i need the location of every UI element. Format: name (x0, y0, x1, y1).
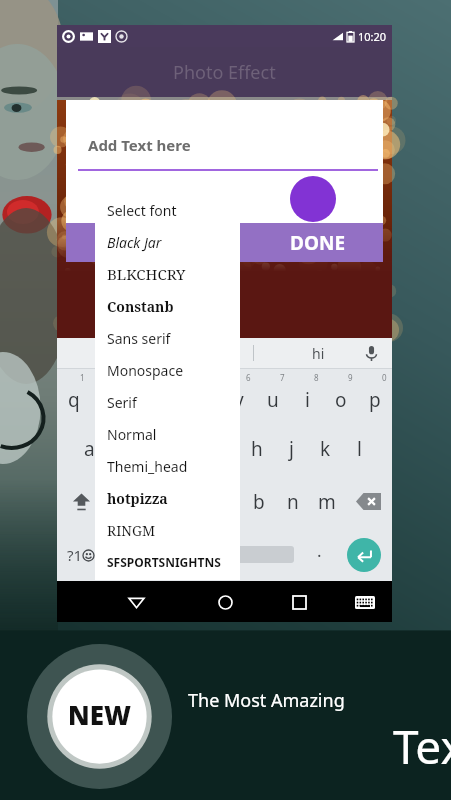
staticText: l (357, 436, 362, 462)
button[interactable]: b (242, 475, 276, 528)
button[interactable]: Home (208, 585, 242, 619)
button[interactable]: Black Jar (95, 226, 240, 258)
staticText: BLKCHCRY (107, 264, 186, 284)
staticText: The Most Amazing (188, 688, 345, 713)
button[interactable]: Select font (95, 194, 240, 226)
other: Voice input (364, 346, 379, 361)
staticText: NEW (68, 697, 131, 732)
staticText: i (305, 387, 310, 413)
staticText: Photo Effect (173, 60, 276, 85)
button[interactable]: Constanb (95, 290, 240, 322)
button[interactable]: DONE (66, 223, 383, 262)
staticText: 4 (179, 372, 184, 383)
staticText: SFSPORTSNIGHTNS (107, 554, 221, 570)
staticText: DONE (290, 230, 346, 256)
staticText: x (152, 489, 163, 515)
button[interactable]: v (208, 475, 242, 528)
staticText: . (317, 539, 322, 562)
button[interactable]: z (106, 475, 140, 528)
button[interactable]: Serif (95, 386, 240, 418)
button[interactable]: Backspace (344, 475, 392, 528)
staticText: Add Text here (88, 135, 191, 155)
staticText: d (150, 436, 162, 462)
button[interactable]: k (308, 422, 342, 475)
button[interactable]: Normal (95, 418, 240, 450)
staticText: j (289, 436, 294, 462)
staticText: 1 (80, 372, 85, 383)
button[interactable]: Keyboard (350, 587, 380, 617)
button[interactable]: Back (119, 585, 153, 619)
button[interactable]: SFSPORTSNIGHTNS (95, 546, 240, 578)
button[interactable]: 2 (90, 369, 123, 422)
button[interactable]: RINGM (95, 514, 240, 546)
staticText: q (68, 387, 80, 413)
button[interactable]: n (276, 475, 310, 528)
button[interactable]: hotpizza (95, 482, 240, 514)
button[interactable]: Pick color (290, 176, 336, 222)
staticText: ?1 (67, 545, 83, 565)
staticText: 8 (314, 372, 319, 383)
button[interactable]: 0 (358, 369, 392, 422)
button[interactable]: . (302, 528, 336, 581)
staticText: 0 (382, 372, 387, 383)
staticText: Text (393, 715, 451, 778)
staticText: h (251, 436, 263, 462)
button[interactable]: l (342, 422, 376, 475)
staticText: Black Jar (107, 233, 162, 252)
button[interactable]: 9 (324, 369, 358, 422)
button[interactable]: x (140, 475, 174, 528)
button[interactable]: Sans serif (95, 322, 240, 354)
button[interactable]: j (274, 422, 308, 475)
staticText: 2 (113, 372, 118, 383)
staticText: s (118, 436, 128, 462)
staticText: Themi_head (107, 457, 188, 476)
button[interactable]: 6 (222, 369, 256, 422)
button[interactable]: s (106, 422, 139, 475)
staticText: Select font (107, 201, 177, 220)
button[interactable]: 3 (123, 369, 156, 422)
staticText: b (253, 489, 265, 515)
button[interactable]: ?1 (57, 528, 104, 581)
button[interactable]: Recents (282, 585, 316, 619)
button[interactable]: 4 (156, 369, 189, 422)
button[interactable] (168, 528, 302, 581)
button[interactable]: 1 (57, 369, 90, 422)
staticText: p (369, 387, 381, 413)
button[interactable]: , (104, 528, 136, 581)
button[interactable]: a (73, 422, 106, 475)
staticText: z (119, 489, 128, 515)
button[interactable]: Shift (57, 475, 106, 528)
button[interactable]: Language (136, 528, 168, 581)
staticText: 7 (280, 372, 285, 383)
staticText: w (99, 387, 114, 413)
button[interactable]: Monospace (95, 354, 240, 386)
staticText: Serif (107, 393, 137, 412)
button[interactable]: f (172, 422, 206, 475)
button[interactable]: d (139, 422, 172, 475)
button[interactable]: 7 (256, 369, 290, 422)
staticText: a (84, 436, 95, 462)
button[interactable]: BLKCHCRY (95, 258, 240, 290)
button[interactable]: 8 (290, 369, 324, 422)
staticText: u (267, 387, 279, 413)
staticText: hotpizza (107, 489, 168, 508)
button[interactable]: Enter (336, 528, 392, 581)
staticText: e (134, 387, 145, 413)
staticText: 9 (348, 372, 353, 383)
button[interactable]: m (310, 475, 344, 528)
button[interactable]: Themi_head (95, 450, 240, 482)
button[interactable]: h (240, 422, 274, 475)
staticText: Normal (107, 425, 157, 444)
staticText: n (287, 489, 299, 515)
staticText: k (320, 436, 331, 462)
staticText: 10:20 (358, 29, 387, 44)
